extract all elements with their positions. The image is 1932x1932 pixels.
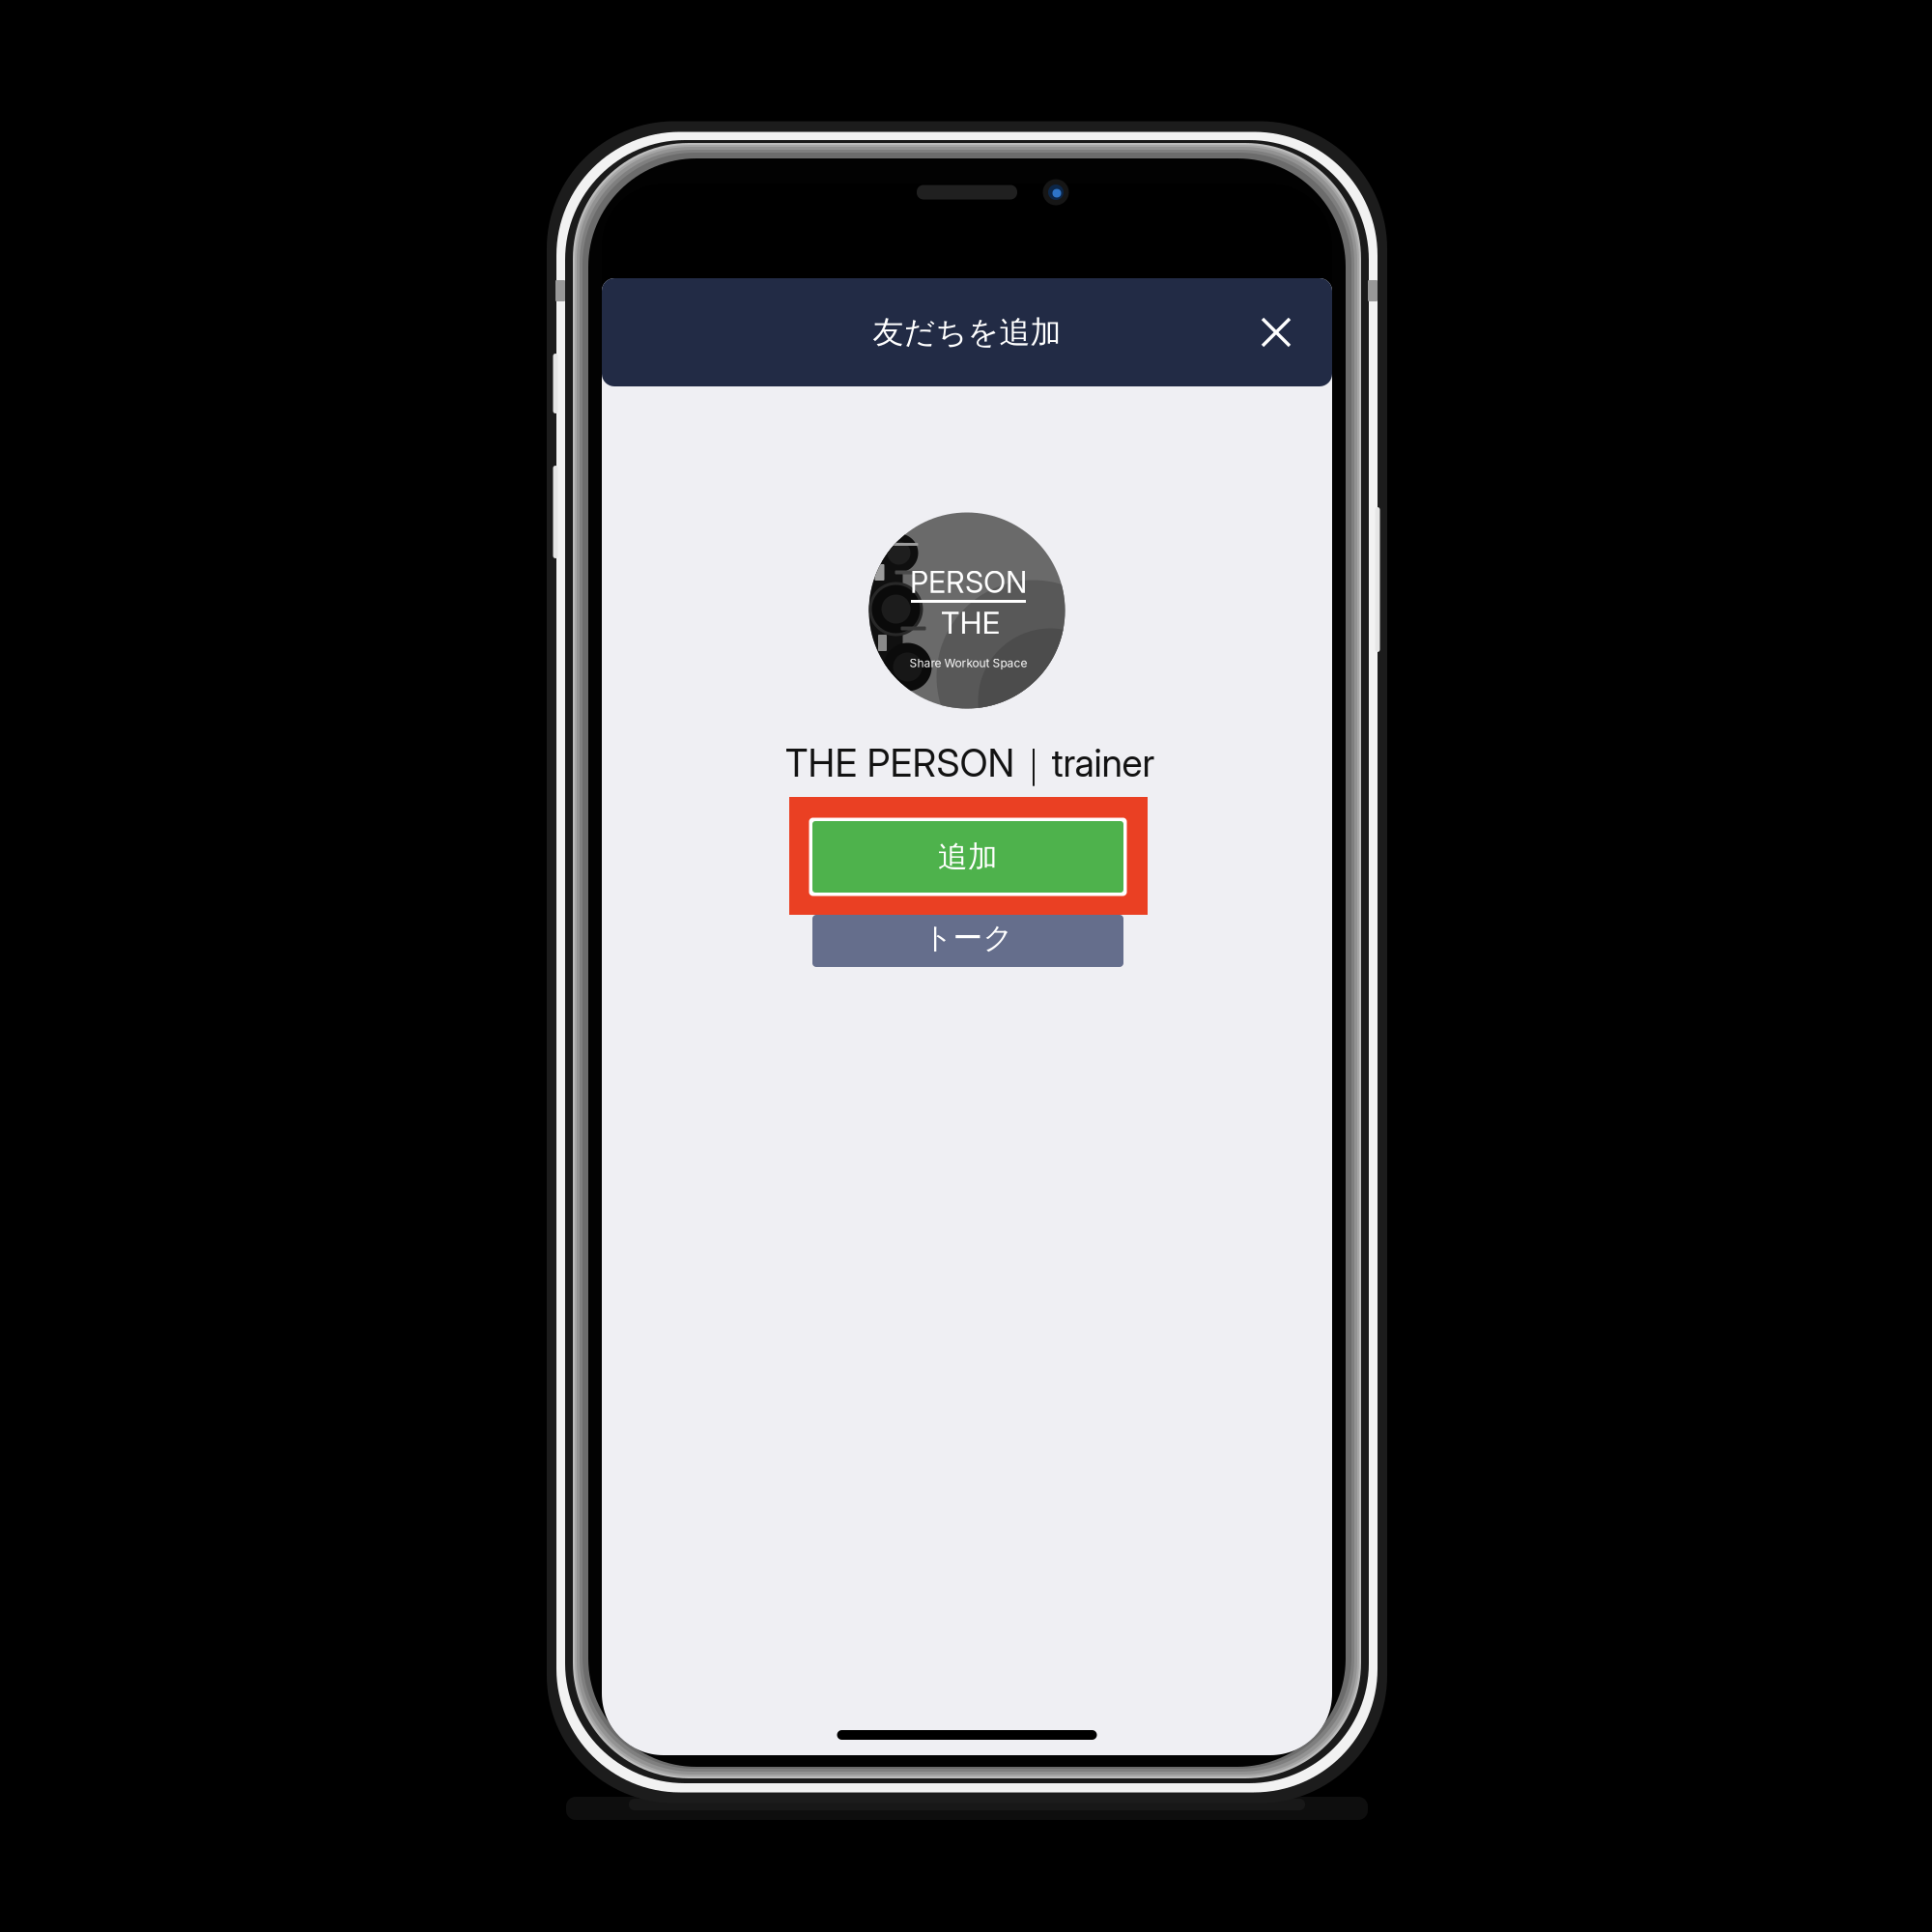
button[interactable]: 追加: [809, 818, 1127, 896]
staticText: トーク: [923, 919, 1013, 957]
staticText: PERSON: [910, 564, 1027, 600]
button[interactable]: 閉じる: [1238, 295, 1314, 370]
staticText: THE: [940, 604, 1000, 641]
staticText: THE PERSON｜trainer: [785, 740, 1155, 788]
button[interactable]: トーク: [812, 915, 1123, 967]
staticText: 友だちを追加: [873, 313, 1061, 352]
staticText: Share Workout Space: [909, 656, 1027, 670]
staticText: 追加: [938, 838, 998, 875]
